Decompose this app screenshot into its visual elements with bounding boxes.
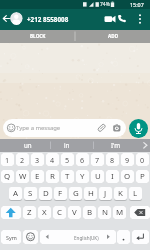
staticText: 4 bbox=[50, 155, 55, 165]
staticText: E bbox=[35, 171, 40, 182]
staticText: G bbox=[73, 188, 79, 199]
staticText: K bbox=[118, 188, 123, 199]
button[interactable]: E bbox=[31, 170, 44, 183]
button[interactable]: 1 bbox=[1, 153, 14, 166]
button[interactable]: 8 bbox=[106, 153, 119, 166]
button[interactable] bbox=[75, 30, 150, 43]
staticText: Z bbox=[27, 207, 32, 218]
button[interactable]: 6 bbox=[76, 153, 89, 166]
button[interactable]: 0 bbox=[136, 153, 149, 166]
staticText: V bbox=[72, 207, 77, 218]
staticText: M bbox=[116, 207, 124, 218]
staticText: Q bbox=[4, 171, 11, 182]
staticText: ADD bbox=[108, 33, 119, 39]
button[interactable]: O bbox=[121, 170, 134, 183]
button[interactable]: C bbox=[53, 206, 66, 219]
staticText: J bbox=[104, 188, 107, 199]
staticText: A bbox=[13, 188, 19, 199]
button[interactable]: Z bbox=[23, 206, 36, 219]
button[interactable]: K bbox=[114, 187, 127, 200]
button[interactable] bbox=[132, 230, 149, 244]
staticText: 15:07 bbox=[130, 1, 144, 8]
button[interactable] bbox=[135, 12, 145, 26]
staticText: T bbox=[65, 171, 70, 182]
button[interactable]: I bbox=[106, 170, 119, 183]
staticText: 3 bbox=[35, 155, 40, 165]
button[interactable]: H bbox=[84, 187, 97, 200]
button[interactable] bbox=[130, 206, 150, 219]
button[interactable]: 2 bbox=[16, 153, 29, 166]
staticText: I bbox=[111, 171, 114, 182]
button[interactable] bbox=[1, 11, 11, 27]
staticText: 1 bbox=[5, 155, 10, 165]
button[interactable] bbox=[50, 139, 93, 152]
button[interactable] bbox=[117, 230, 130, 244]
button[interactable]: T bbox=[61, 170, 74, 183]
button[interactable]: J bbox=[99, 187, 112, 200]
button[interactable] bbox=[103, 13, 117, 25]
staticText: O bbox=[124, 171, 131, 182]
button[interactable]: N bbox=[98, 206, 111, 219]
button[interactable]: R bbox=[46, 170, 59, 183]
staticText: 0 bbox=[140, 155, 145, 165]
button[interactable] bbox=[117, 13, 128, 25]
staticText: 5 bbox=[65, 155, 70, 165]
button[interactable]: P bbox=[136, 170, 149, 183]
staticText: English(UK) bbox=[74, 235, 99, 241]
button[interactable]: Q bbox=[1, 170, 14, 183]
staticText: +212 8558008 bbox=[27, 15, 69, 24]
button[interactable] bbox=[129, 119, 148, 138]
button[interactable]: M bbox=[113, 206, 126, 219]
button[interactable]: Y bbox=[76, 170, 89, 183]
staticText: R bbox=[50, 171, 55, 182]
staticText: BLOCK bbox=[30, 33, 46, 39]
staticText: F bbox=[58, 188, 63, 199]
staticText: U bbox=[95, 171, 101, 182]
button[interactable]: G bbox=[69, 187, 82, 200]
staticText: 2 bbox=[20, 155, 25, 165]
staticText: X bbox=[42, 207, 47, 218]
button[interactable] bbox=[93, 139, 138, 152]
button[interactable]: D bbox=[39, 187, 52, 200]
button[interactable]: 5 bbox=[61, 153, 74, 166]
staticText: in bbox=[64, 141, 70, 149]
staticText: Sym bbox=[6, 234, 17, 241]
staticText: 7 bbox=[95, 155, 100, 165]
button[interactable]: V bbox=[68, 206, 81, 219]
staticText: L bbox=[133, 188, 138, 199]
staticText: 74% bbox=[100, 1, 110, 8]
button[interactable]: 3 bbox=[31, 153, 44, 166]
staticText: I'm bbox=[111, 141, 121, 149]
staticText: N bbox=[102, 207, 108, 218]
button[interactable]: W bbox=[16, 170, 29, 183]
button[interactable]: 4 bbox=[46, 153, 59, 166]
button[interactable] bbox=[10, 12, 23, 25]
staticText: 6 bbox=[80, 155, 85, 165]
button[interactable]: Sym bbox=[1, 230, 21, 244]
button[interactable] bbox=[23, 230, 38, 244]
button[interactable] bbox=[1, 206, 21, 219]
staticText: H bbox=[88, 188, 94, 199]
button[interactable] bbox=[0, 139, 50, 152]
button[interactable]: English(UK) bbox=[40, 230, 116, 244]
button[interactable]: 7 bbox=[91, 153, 104, 166]
staticText: Y bbox=[80, 171, 85, 182]
button[interactable]: 9 bbox=[121, 153, 134, 166]
button[interactable]: B bbox=[83, 206, 96, 219]
staticText: C bbox=[57, 207, 62, 218]
button[interactable]: A bbox=[9, 187, 22, 200]
staticText: 8 bbox=[110, 155, 115, 165]
button[interactable]: S bbox=[24, 187, 37, 200]
staticText: P bbox=[140, 171, 145, 182]
button[interactable]: F bbox=[54, 187, 67, 200]
button[interactable]: L bbox=[129, 187, 142, 200]
staticText: D bbox=[43, 188, 49, 199]
button[interactable] bbox=[3, 119, 126, 137]
staticText: W bbox=[19, 171, 27, 182]
staticText: Type a message bbox=[16, 124, 61, 132]
button[interactable] bbox=[0, 30, 75, 43]
button[interactable]: U bbox=[91, 170, 104, 183]
staticText: B bbox=[87, 207, 93, 218]
button[interactable]: X bbox=[38, 206, 51, 219]
staticText: un bbox=[24, 141, 32, 149]
